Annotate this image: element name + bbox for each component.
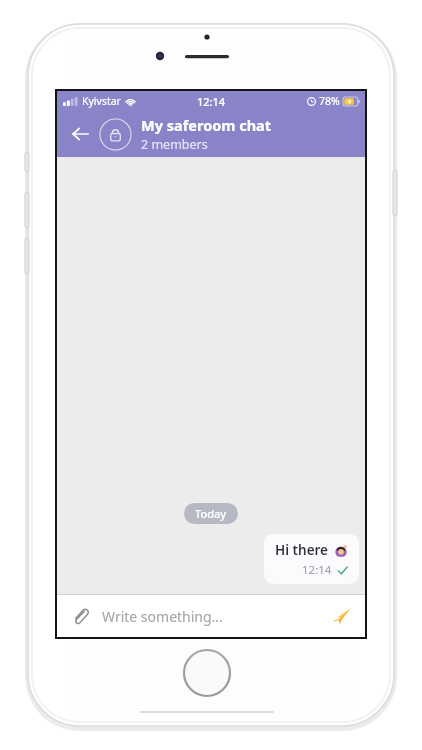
button[interactable]: Write something...: [102, 607, 326, 626]
button[interactable]: Today: [184, 503, 238, 524]
staticText: My saferoom chat: [141, 115, 272, 135]
button[interactable]: Hi there: [264, 534, 359, 584]
staticText: Write something...: [102, 607, 223, 626]
button[interactable]: Secret chat: [99, 118, 132, 151]
button[interactable]: Send: [326, 601, 356, 631]
staticText: 12:14: [302, 562, 332, 578]
button[interactable]: Back: [65, 119, 95, 149]
staticText: Hi there: [275, 541, 329, 559]
staticText: 78%: [319, 94, 340, 108]
button[interactable]: My saferoom chat: [141, 115, 355, 153]
staticText: Kyivstar: [82, 94, 121, 108]
staticText: Today: [195, 506, 227, 521]
staticText: 12:14: [197, 94, 226, 109]
button[interactable]: Attach file: [66, 602, 94, 630]
staticText: 2 members: [141, 136, 208, 153]
